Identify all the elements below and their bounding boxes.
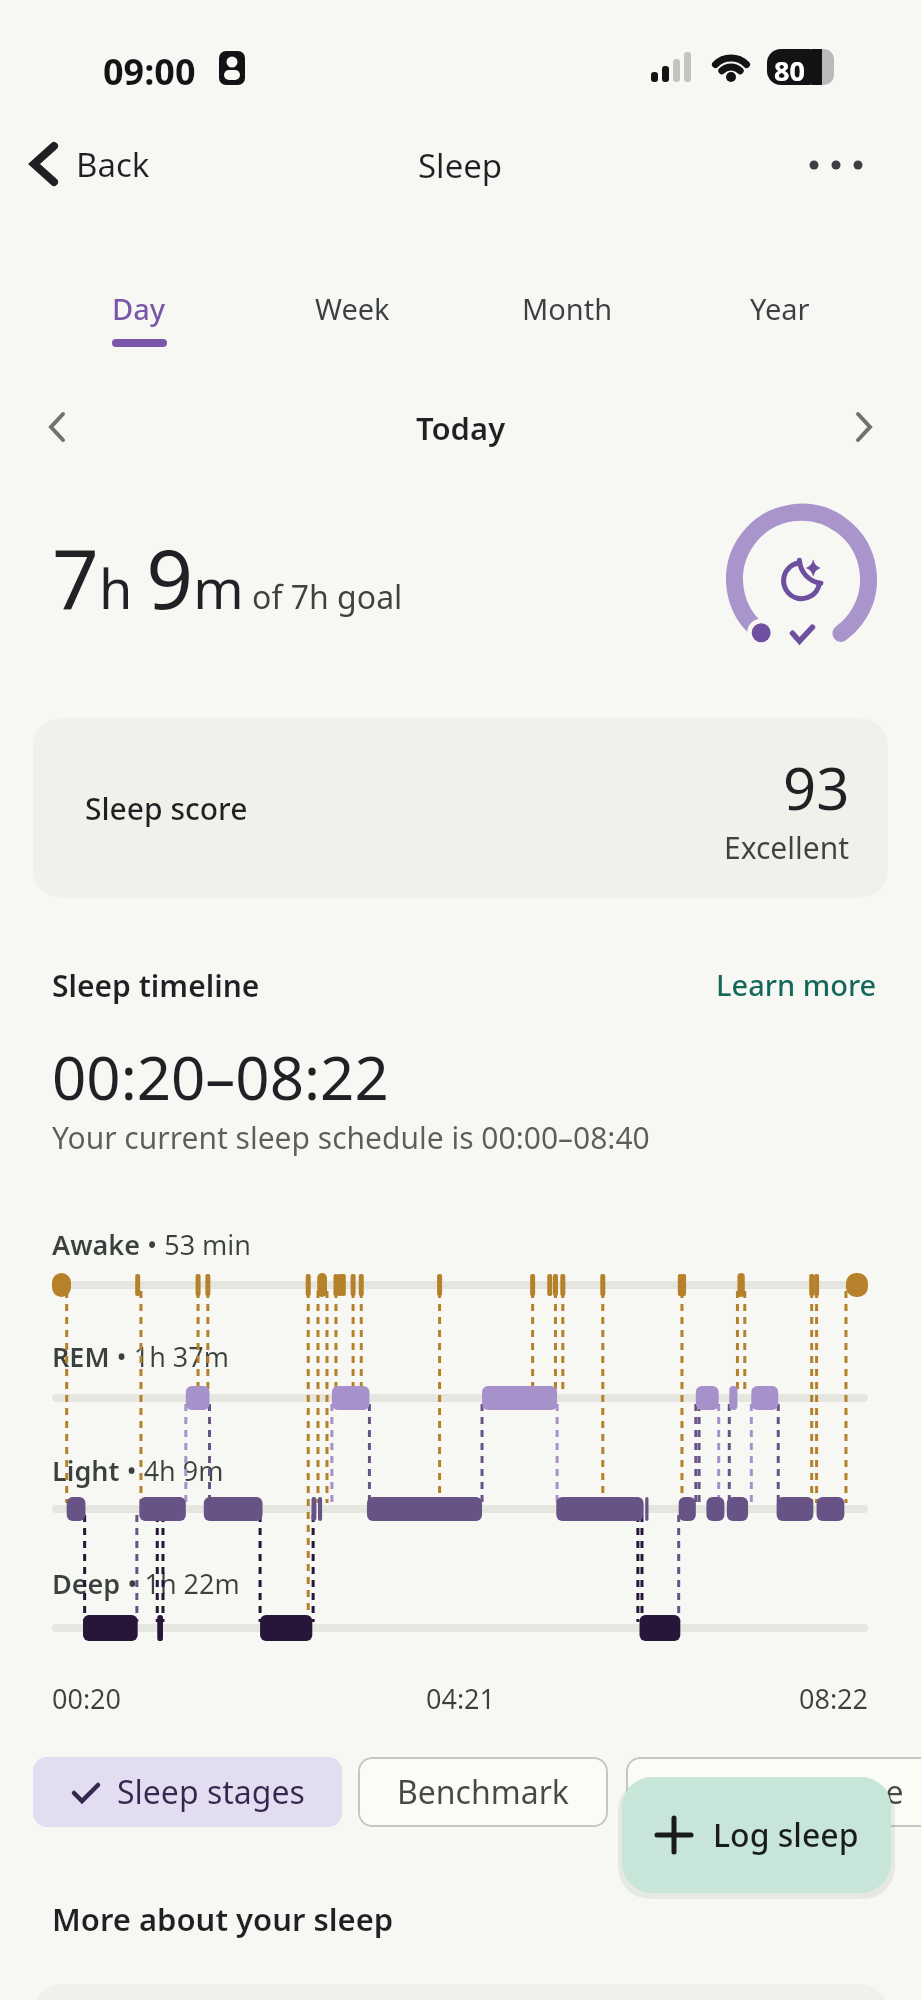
button[interactable]: Sleep score — [33, 718, 888, 898]
staticText: 80 — [774, 52, 805, 89]
staticText: Sleep stages — [117, 1770, 305, 1814]
button[interactable]: Learn more — [0, 965, 877, 1004]
staticText: 00:20 — [52, 1680, 122, 1717]
button[interactable]: Month — [477, 289, 657, 359]
staticText: Learn more — [716, 965, 877, 1004]
staticText: Sleep timeline — [52, 965, 260, 1006]
staticText: Sleep score — [85, 788, 248, 829]
staticText: Light • 4h 9m — [52, 1452, 224, 1489]
staticText: Log sleep — [713, 1813, 859, 1857]
button[interactable] — [796, 140, 876, 190]
staticText: 00:20–08:22 — [52, 1036, 389, 1118]
button[interactable]: Back — [20, 138, 150, 190]
button[interactable]: Week — [262, 289, 442, 359]
button[interactable] — [46, 408, 70, 448]
staticText: 08:22 — [799, 1680, 869, 1717]
staticText: 93 — [783, 748, 850, 827]
button[interactable]: Day — [49, 289, 229, 359]
staticText: Day — [112, 289, 166, 328]
staticText: Baseline — [777, 1770, 904, 1814]
staticText: Your current sleep schedule is 00:00–08:… — [52, 1117, 650, 1158]
staticText: Week — [315, 289, 390, 328]
staticText: Sleep — [418, 143, 503, 188]
button[interactable] — [851, 408, 875, 448]
staticText: Today — [416, 407, 506, 449]
staticText: 04:21 — [426, 1680, 496, 1717]
button[interactable]: Year — [690, 289, 870, 359]
button[interactable]: Log sleep — [622, 1777, 891, 1893]
staticText: More about your sleep — [52, 1898, 394, 1940]
staticText: Month — [522, 289, 613, 328]
button[interactable]: Baseline — [626, 1757, 921, 1827]
staticText: Awake • 53 min — [52, 1226, 252, 1263]
staticText: Year — [750, 289, 810, 328]
staticText: Deep • 1h 22m — [52, 1565, 240, 1602]
button[interactable]: Benchmark — [358, 1757, 608, 1827]
staticText: 7h 9m of 7h goal — [52, 521, 403, 633]
staticText: Benchmark — [397, 1770, 569, 1814]
button[interactable]: Sleep stages — [33, 1757, 342, 1827]
staticText: 09:00 — [103, 47, 196, 96]
staticText: Excellent — [724, 827, 850, 868]
staticText: Back — [76, 142, 150, 187]
staticText: REM • 1h 37m — [52, 1338, 229, 1375]
